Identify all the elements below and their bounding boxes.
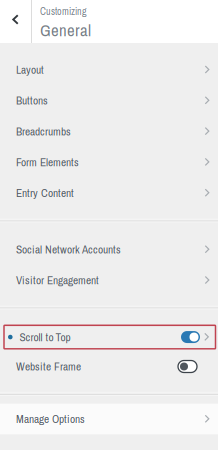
button[interactable]: Manage Options	[0, 404, 218, 434]
staticText: Customizing	[40, 5, 87, 18]
staticText: Website Frame	[16, 359, 81, 374]
button[interactable]: Layout	[0, 54, 218, 85]
staticText: Breadcrumbs	[16, 124, 71, 139]
button[interactable]: Website Frame	[0, 351, 218, 382]
button[interactable]: Scroll to Top	[0, 325, 218, 349]
button[interactable]: Form Elements	[0, 147, 218, 177]
staticText: Layout	[16, 62, 44, 77]
button[interactable]: Buttons	[0, 85, 218, 116]
button[interactable]: Breadcrumbs	[0, 116, 218, 147]
staticText: Manage Options	[16, 411, 85, 427]
staticText: Entry Content	[16, 185, 74, 201]
staticText: General	[40, 19, 91, 41]
staticText: Scroll to Top	[20, 329, 71, 345]
button[interactable]: Visitor Engagement	[0, 265, 218, 296]
button[interactable]: Back	[0, 0, 31, 43]
button[interactable]: Social Network Accounts	[0, 234, 218, 265]
staticText: Form Elements	[16, 154, 79, 170]
staticText: Buttons	[16, 93, 48, 108]
button[interactable]: Entry Content	[0, 177, 218, 208]
staticText: Visitor Engagement	[16, 273, 99, 288]
staticText: Social Network Accounts	[16, 242, 121, 257]
